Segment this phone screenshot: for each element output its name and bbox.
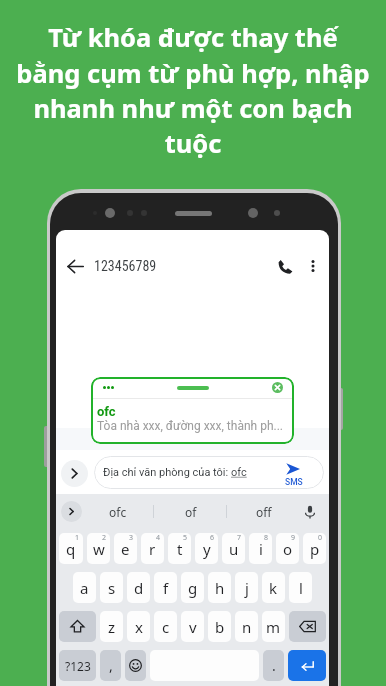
staticText: ofc bbox=[97, 404, 116, 419]
button[interactable]: l bbox=[289, 572, 312, 603]
button[interactable]: ofc bbox=[82, 494, 154, 529]
staticText: 5 bbox=[183, 533, 188, 543]
button[interactable]: Dismiss suggestion bbox=[91, 377, 294, 444]
staticText: 6 bbox=[210, 533, 215, 543]
staticText: v bbox=[189, 617, 197, 637]
button[interactable]: Show more bbox=[61, 460, 88, 487]
staticText: u bbox=[229, 539, 239, 559]
button[interactable]: x bbox=[127, 611, 150, 642]
staticText: k bbox=[269, 578, 278, 598]
button[interactable]: n bbox=[235, 611, 258, 642]
button[interactable]: Voice input bbox=[300, 502, 320, 522]
button[interactable]: f bbox=[154, 572, 177, 603]
button[interactable]: y bbox=[195, 533, 218, 564]
staticText: 123456789 bbox=[94, 258, 157, 274]
staticText: b bbox=[215, 617, 225, 637]
button[interactable]: d bbox=[127, 572, 150, 603]
staticText: off bbox=[256, 504, 272, 520]
staticText: h bbox=[215, 578, 225, 598]
staticText: 3 bbox=[129, 533, 134, 543]
button[interactable]: u bbox=[222, 533, 245, 564]
staticText: e bbox=[121, 539, 130, 559]
button[interactable]: s bbox=[100, 572, 123, 603]
button[interactable]: Backspace bbox=[289, 611, 326, 642]
staticText: r bbox=[149, 539, 156, 559]
button[interactable]: g bbox=[181, 572, 204, 603]
button[interactable]: Enter bbox=[288, 650, 326, 681]
staticText: x bbox=[135, 617, 143, 637]
staticText: t bbox=[177, 539, 183, 559]
staticText: 0 bbox=[318, 533, 323, 543]
staticText: ?123 bbox=[65, 658, 91, 674]
staticText: 7 bbox=[237, 533, 242, 543]
staticText: c bbox=[162, 617, 170, 637]
button[interactable]: p bbox=[303, 533, 326, 564]
button[interactable]: m bbox=[262, 611, 285, 642]
button[interactable]: Call bbox=[271, 252, 299, 280]
button[interactable]: z bbox=[100, 611, 123, 642]
button[interactable]: h bbox=[208, 572, 231, 603]
button[interactable]: Địa chỉ văn phòng của tôi: bbox=[94, 456, 324, 489]
button[interactable]: k bbox=[262, 572, 285, 603]
staticText: n bbox=[242, 617, 252, 637]
button[interactable]: q bbox=[59, 533, 83, 564]
button[interactable]: v bbox=[181, 611, 204, 642]
button[interactable]: w bbox=[87, 533, 110, 564]
staticText: 1 bbox=[75, 533, 80, 543]
button[interactable]: off bbox=[227, 494, 300, 529]
staticText: 2 bbox=[102, 533, 107, 543]
staticText: z bbox=[108, 617, 116, 637]
staticText: i bbox=[259, 539, 263, 559]
button[interactable]: Send SMS bbox=[282, 456, 320, 489]
button[interactable]: of bbox=[154, 494, 227, 529]
button[interactable]: More options bbox=[299, 252, 327, 280]
button[interactable]: t bbox=[168, 533, 191, 564]
button[interactable]: Back bbox=[61, 252, 89, 280]
staticText: y bbox=[203, 539, 211, 559]
button[interactable]: Comma bbox=[100, 650, 121, 681]
staticText: SMS bbox=[285, 477, 303, 487]
staticText: . bbox=[272, 656, 276, 675]
staticText: g bbox=[188, 578, 198, 598]
staticText: s bbox=[108, 578, 116, 598]
button[interactable]: b bbox=[208, 611, 231, 642]
staticText: m bbox=[266, 617, 281, 637]
staticText: ofc bbox=[231, 466, 247, 479]
staticText: of bbox=[185, 504, 197, 520]
staticText: d bbox=[134, 578, 144, 598]
button[interactable]: r bbox=[141, 533, 164, 564]
staticText: 4 bbox=[156, 533, 161, 543]
staticText: Địa chỉ văn phòng của tôi: bbox=[103, 466, 231, 479]
button[interactable]: c bbox=[154, 611, 177, 642]
staticText: 9 bbox=[291, 533, 296, 543]
staticText: Từ khóa được thay thế bằng cụm từ phù hợ… bbox=[15, 20, 371, 160]
staticText: p bbox=[310, 539, 320, 559]
button[interactable]: Shift bbox=[59, 611, 96, 642]
staticText: Tòa nhà xxx, đường xxx, thành ph... bbox=[97, 419, 283, 433]
staticText: w bbox=[93, 539, 105, 559]
button[interactable]: Emoji bbox=[125, 650, 146, 681]
button[interactable]: More suggestions bbox=[61, 501, 82, 522]
button[interactable]: e bbox=[114, 533, 137, 564]
button[interactable]: j bbox=[235, 572, 258, 603]
button[interactable]: o bbox=[276, 533, 299, 564]
button[interactable]: Dismiss suggestion bbox=[272, 382, 283, 393]
staticText: l bbox=[299, 578, 303, 598]
button[interactable]: Period bbox=[263, 650, 284, 681]
staticText: ofc bbox=[109, 504, 127, 520]
staticText: o bbox=[283, 539, 293, 559]
button[interactable]: Symbols bbox=[59, 650, 96, 681]
button[interactable]: a bbox=[73, 572, 96, 603]
staticText: q bbox=[66, 539, 76, 559]
staticText: 8 bbox=[264, 533, 269, 543]
staticText: , bbox=[109, 656, 113, 675]
button[interactable]: i bbox=[249, 533, 272, 564]
staticText: a bbox=[80, 578, 89, 598]
staticText: j bbox=[245, 578, 249, 598]
staticText: f bbox=[163, 578, 169, 598]
